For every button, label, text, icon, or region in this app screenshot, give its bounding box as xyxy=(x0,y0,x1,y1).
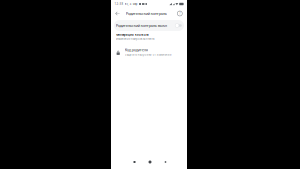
staticText: Код родителя xyxy=(125,47,148,52)
button[interactable]: Back xyxy=(112,8,122,18)
button[interactable]: Родительский контроль выкл xyxy=(114,20,184,31)
staticText: вс, 4 мар xyxy=(125,2,138,6)
staticText: Изменение настроек контента xyxy=(116,37,154,41)
staticText: Фильтрация контента xyxy=(116,33,149,36)
button[interactable]: Home xyxy=(142,156,158,167)
button[interactable]: Help xyxy=(175,8,185,18)
button[interactable]: Recent apps xyxy=(127,156,142,167)
staticText: Родительский контроль xyxy=(126,11,167,16)
staticText: ? xyxy=(179,12,180,15)
button[interactable]: Back xyxy=(158,156,173,167)
staticText: Защитите настройки от изменений xyxy=(125,53,172,56)
button[interactable]: Код родителя xyxy=(111,46,187,57)
staticText: Родительский контроль выкл xyxy=(116,23,167,28)
staticText: 12:38 xyxy=(114,2,123,6)
